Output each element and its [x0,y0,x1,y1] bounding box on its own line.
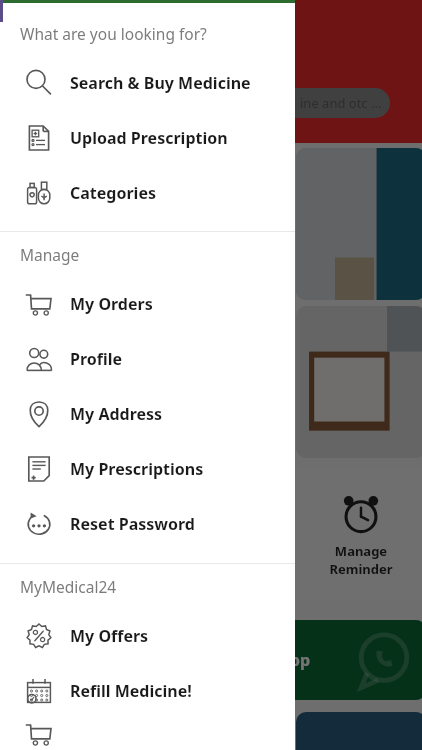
button[interactable]: My Offers [0,608,295,663]
button[interactable]: My Prescriptions [0,441,295,496]
staticText: Manage Reminder [329,542,393,578]
staticText: op [290,649,311,671]
button[interactable]: Refill Medicine! [0,663,295,718]
staticText: Upload Prescription [70,127,228,149]
staticText: What are you looking for? [20,23,207,44]
staticText: Refill Medicine! [70,680,192,702]
staticText: My Prescriptions [70,458,204,480]
button[interactable]: Reset Password [0,496,295,551]
staticText: Manage [20,244,80,265]
button[interactable]: Profile [0,331,295,386]
button[interactable]: op [286,620,422,700]
staticText: Profile [70,348,123,370]
staticText: ine and otc ... [300,94,382,112]
button[interactable]: Upload Prescription [0,110,295,165]
staticText: Reset Password [70,513,195,535]
button[interactable]: ine and otc ... [250,88,390,118]
button[interactable]: Manage Reminder [296,470,422,600]
staticText: Categories [70,182,156,204]
button[interactable]: My Orders [0,276,295,331]
button[interactable] [0,718,295,750]
staticText: My Orders [70,293,153,315]
button[interactable]: My Address [0,386,295,441]
staticText: MyMedical24 [20,576,117,597]
button[interactable]: Search & Buy Medicine [0,55,295,110]
button[interactable]: Categories [0,165,295,220]
staticText: Search & Buy Medicine [70,72,251,94]
staticText: My Address [70,403,163,425]
staticText: My Offers [70,625,149,647]
